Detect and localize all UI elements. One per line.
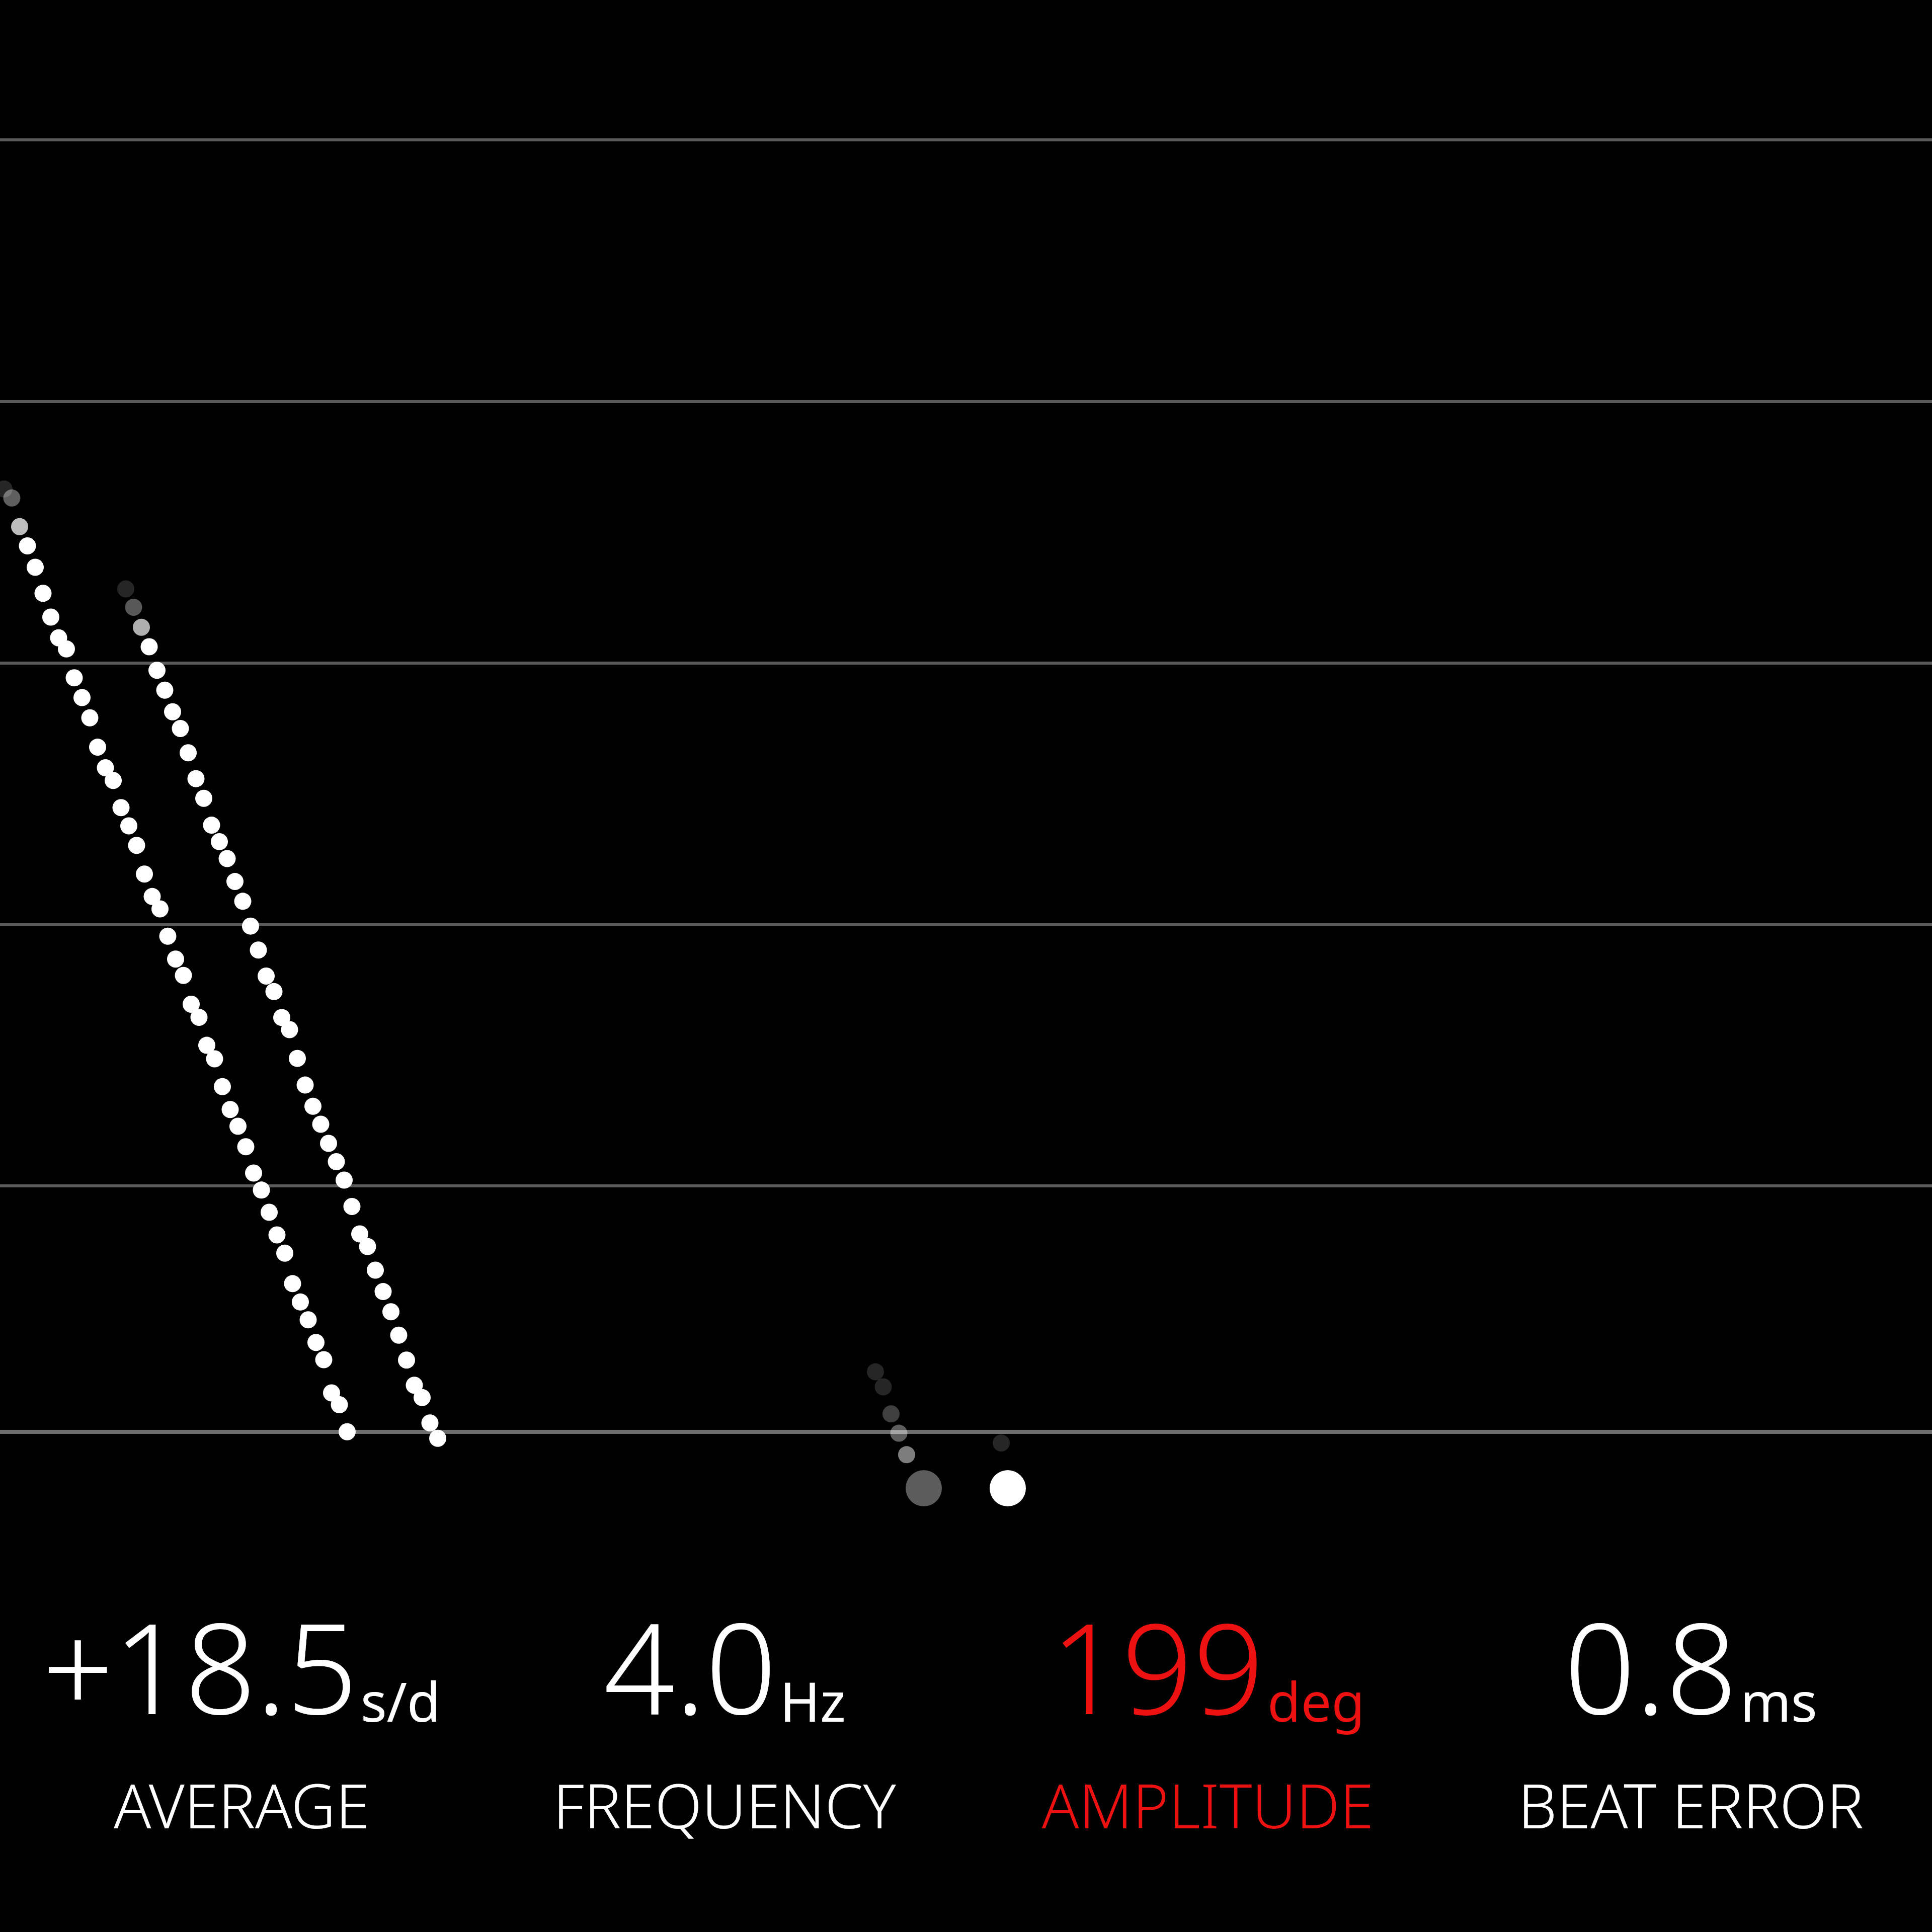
staticText: deg <box>1267 1664 1365 1738</box>
staticText: AMPLITUDE <box>1041 1763 1374 1846</box>
staticText: ms <box>1740 1664 1817 1738</box>
staticText: +18.5 <box>42 1581 358 1751</box>
staticText: 0.8 <box>1564 1581 1737 1751</box>
button[interactable]: 0.8 <box>1449 1581 1932 1846</box>
staticText: AVERAGE <box>114 1763 370 1846</box>
staticText: s/d <box>361 1664 441 1738</box>
staticText: FREQUENCY <box>553 1763 896 1846</box>
button[interactable]: +18.5 <box>0 1581 483 1846</box>
staticText: BEAT ERROR <box>1518 1763 1864 1846</box>
staticText: 199 <box>1051 1581 1264 1751</box>
button[interactable]: 4.0 <box>483 1581 966 1846</box>
button[interactable]: 199 <box>966 1581 1449 1846</box>
staticText: 4.0 <box>604 1581 777 1751</box>
button[interactable] <box>0 0 1932 1434</box>
button[interactable]: Page indicator <box>906 1470 1026 1506</box>
staticText: Hz <box>780 1664 846 1738</box>
